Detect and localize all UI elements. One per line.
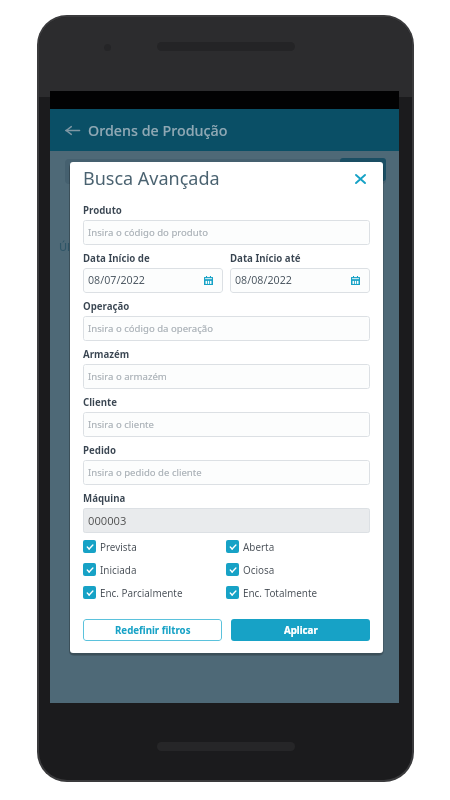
button[interactable]: 08/08/2022 <box>230 268 370 293</box>
staticText: Insira o código do produto <box>88 226 208 239</box>
staticText: Pedido <box>83 444 116 457</box>
staticText: Máquina <box>83 492 126 505</box>
staticText: Insira o armazém <box>88 370 167 383</box>
staticText: Armazém <box>83 348 130 361</box>
staticText: Aberta <box>243 540 275 553</box>
staticText: Operação <box>83 300 130 313</box>
button[interactable]: Insira o código do produto <box>83 220 370 245</box>
staticText: Prevista <box>100 540 137 553</box>
staticText: Aplicar <box>284 624 318 637</box>
button[interactable]: Iniciada <box>83 563 226 576</box>
button[interactable]: Voltar <box>63 121 81 139</box>
button[interactable]: 08/07/2022 <box>83 268 223 293</box>
staticText: Insira o cliente <box>88 418 154 431</box>
staticText: Produto <box>83 204 122 217</box>
button[interactable]: Enc. Totalmente <box>226 586 370 599</box>
staticText: Data Início até <box>230 252 301 265</box>
staticText: Insira o pedido de cliente <box>88 466 202 479</box>
staticText: Insira o código da operação <box>88 322 214 335</box>
staticText: Ordens de Produção <box>88 121 228 140</box>
button[interactable]: Aplicar <box>231 619 370 641</box>
button[interactable]: Insira o cliente <box>83 412 370 437</box>
button[interactable]: Enc. Parcialmente <box>83 586 226 599</box>
staticText: 08/08/2022 <box>235 273 292 288</box>
button[interactable]: Voltar <box>50 109 399 151</box>
button[interactable]: Fechar <box>350 169 370 189</box>
staticText: Iniciada <box>100 563 137 576</box>
button[interactable]: Ociosa <box>226 563 370 576</box>
staticText: Cliente <box>83 396 118 409</box>
button[interactable]: Aberta <box>226 540 370 553</box>
staticText: 000003 <box>88 513 127 528</box>
button[interactable]: 000003 <box>83 508 370 533</box>
button[interactable]: Redefinir filtros <box>83 619 222 641</box>
staticText: Enc. Totalmente <box>243 586 318 599</box>
staticText: Ociosa <box>243 563 275 576</box>
button[interactable]: Insira o código da operação <box>83 316 370 341</box>
button[interactable]: Insira o armazém <box>83 364 370 389</box>
staticText: Data Início de <box>83 252 150 265</box>
staticText: Últimas Ordens <box>59 239 141 254</box>
button[interactable]: Prevista <box>83 540 226 553</box>
button[interactable]: Insira o pedido de cliente <box>83 460 370 485</box>
staticText: Enc. Parcialmente <box>100 586 183 599</box>
staticText: 08/07/2022 <box>88 273 145 288</box>
staticText: Redefinir filtros <box>115 624 191 637</box>
staticText: Busca Avançada <box>83 166 220 191</box>
